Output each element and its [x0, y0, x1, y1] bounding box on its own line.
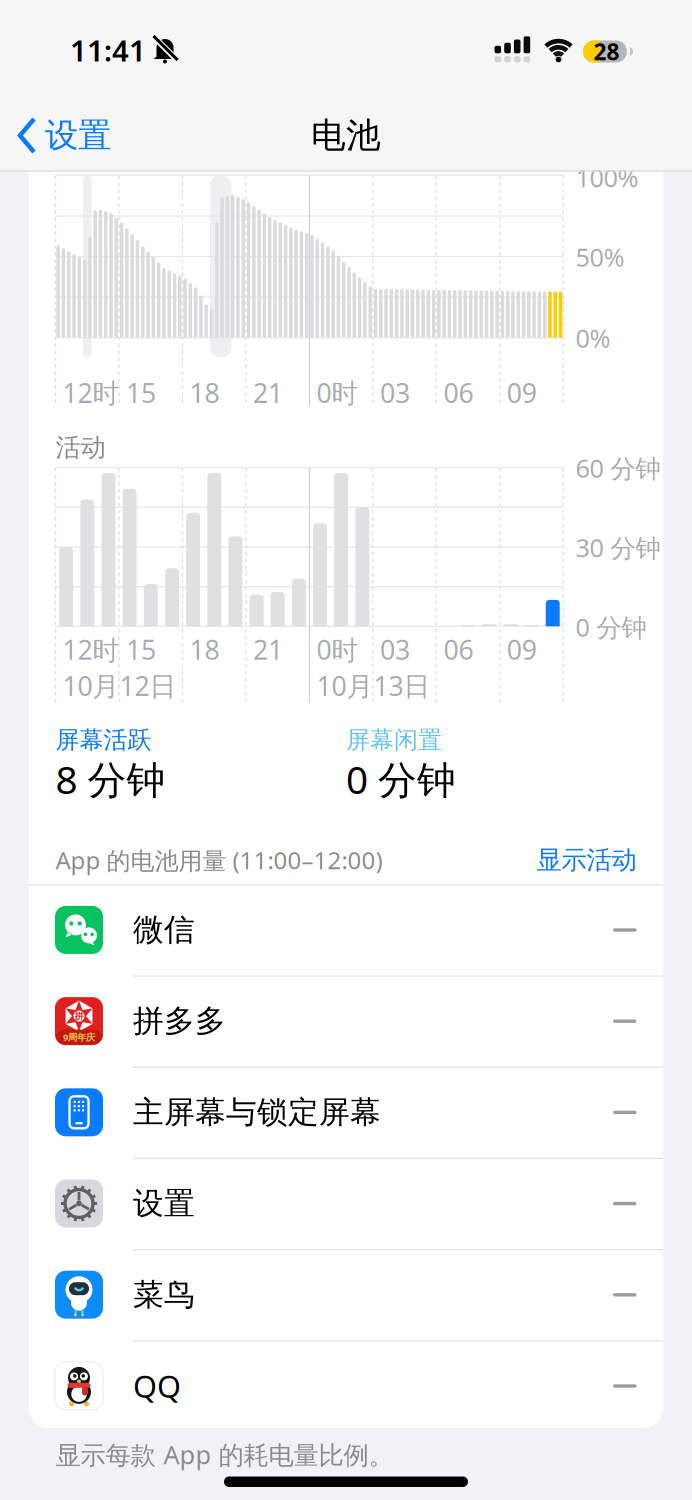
staticText: 拼	[74, 1010, 83, 1022]
staticText: 0时	[316, 632, 358, 667]
staticText: App 的电池用量 (11:00–12:00)	[56, 844, 383, 876]
staticText: 0 分钟	[346, 753, 456, 805]
staticText: 0%	[575, 321, 610, 355]
staticText: 60 分钟	[575, 451, 660, 485]
button[interactable]: 菜鸟	[29, 1249, 663, 1340]
staticText: 12时	[63, 375, 120, 410]
staticText: 设置	[45, 115, 111, 156]
staticText: 15	[126, 375, 156, 410]
staticText: 28	[593, 36, 619, 66]
staticText: 06	[443, 375, 473, 410]
staticText: 菜鸟	[133, 1276, 195, 1314]
staticText: 拼多多	[133, 1002, 226, 1040]
staticText: 屏幕闲置	[346, 725, 442, 755]
staticText: 11:41	[70, 30, 146, 69]
button[interactable]: QQ	[29, 1340, 663, 1431]
staticText: 10月13日	[316, 668, 430, 703]
button[interactable]: 设置	[0, 105, 150, 165]
staticText: 屏幕活跃	[56, 725, 152, 755]
staticText: 8 分钟	[56, 753, 166, 805]
staticText: QQ	[133, 1365, 181, 1406]
staticText: 03	[380, 632, 410, 667]
staticText: 30 分钟	[575, 531, 660, 564]
staticText: 09	[507, 375, 537, 410]
staticText: 18	[189, 632, 219, 667]
staticText: 显示每款 App 的耗电量比例。	[56, 1438, 394, 1471]
staticText: 21	[253, 632, 283, 667]
staticText: 03	[380, 375, 410, 410]
button[interactable]: 微信	[29, 884, 663, 975]
staticText: 主屏幕与锁定屏幕	[133, 1093, 381, 1131]
staticText: 100%	[575, 161, 638, 194]
button[interactable]: 拼	[29, 975, 663, 1067]
staticText: 设置	[133, 1185, 195, 1222]
staticText: 9周年庆	[63, 1031, 95, 1043]
button[interactable]: 显示活动	[466, 835, 636, 885]
staticText: 0 分钟	[575, 610, 646, 644]
staticText: 电池	[311, 114, 381, 157]
staticText: 10月12日	[63, 668, 177, 703]
button[interactable]: 设置	[29, 1158, 663, 1249]
staticText: 12时	[63, 632, 120, 667]
staticText: 50%	[575, 240, 624, 274]
button[interactable]: 主屏幕与锁定屏幕	[29, 1067, 663, 1158]
staticText: 微信	[133, 911, 195, 949]
staticText: 活动	[56, 432, 106, 463]
staticText: 21	[253, 375, 283, 410]
staticText: 显示活动	[536, 844, 636, 875]
staticText: 06	[443, 632, 473, 667]
staticText: 18	[189, 375, 219, 410]
staticText: 15	[126, 632, 156, 667]
staticText: 0时	[316, 375, 358, 410]
staticText: 09	[507, 632, 537, 667]
